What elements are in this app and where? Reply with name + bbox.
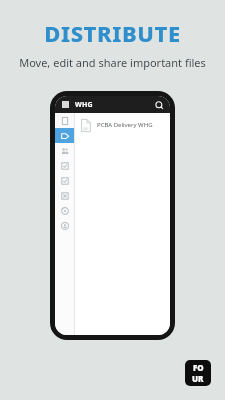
button[interactable]: People [55,143,75,158]
button[interactable]: Search [152,98,166,112]
staticText: UR [192,373,204,384]
button[interactable]: PCBA Delivery WHG [75,113,170,137]
staticText: DISTRIBUTE [44,18,181,48]
button[interactable]: Files [55,113,75,128]
button[interactable]: Reports [55,188,75,203]
button[interactable]: FOUR logo [185,360,211,386]
staticText: Move, edit and share important files [19,55,206,70]
staticText: PCBA Delivery WHG [97,121,153,129]
button[interactable]: Account [55,218,75,233]
staticText: WHG [75,100,93,110]
button[interactable]: Folders [55,128,75,143]
staticText: FO [193,362,204,373]
button[interactable]: Approvals [55,173,75,188]
button[interactable]: Open navigation menu [59,98,72,111]
button[interactable]: Settings [55,203,75,218]
button[interactable]: Tasks [55,158,75,173]
